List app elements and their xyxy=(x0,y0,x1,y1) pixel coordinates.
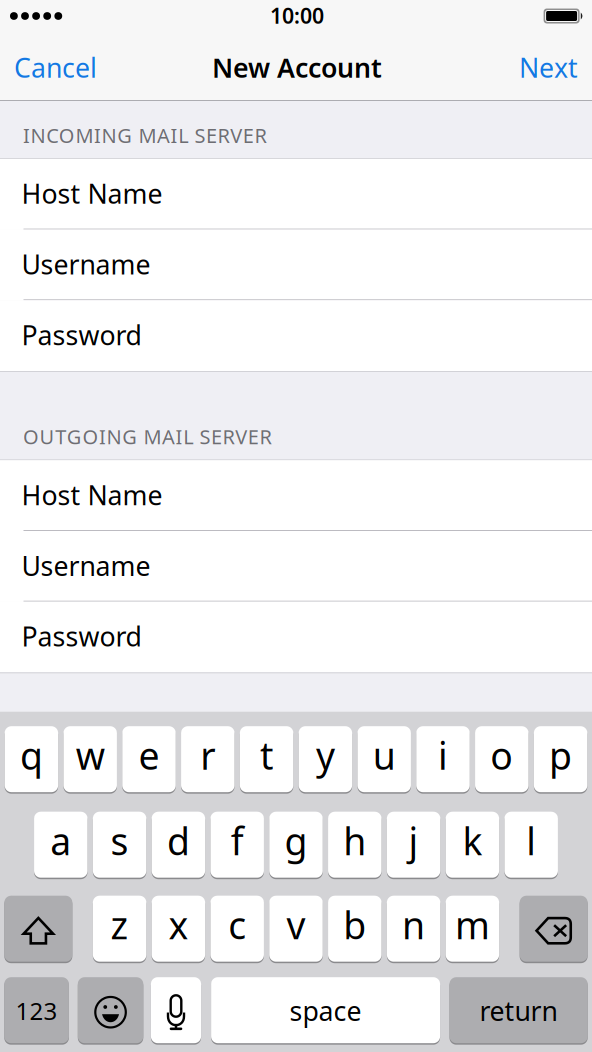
button[interactable]: q xyxy=(5,725,58,793)
staticText: Host Name xyxy=(21,176,162,211)
staticText: y xyxy=(316,730,335,780)
staticText: r xyxy=(200,730,215,780)
staticText: Username xyxy=(21,548,150,583)
button[interactable]: j xyxy=(387,811,440,879)
button[interactable]: m xyxy=(446,895,499,963)
staticText: o xyxy=(490,730,513,780)
staticText: t xyxy=(260,730,273,780)
staticText: w xyxy=(76,730,105,780)
button[interactable]: Host Name xyxy=(0,159,592,230)
button[interactable]: r xyxy=(181,725,234,793)
staticText: x xyxy=(168,900,188,949)
staticText: b xyxy=(343,900,366,949)
staticText: h xyxy=(343,816,366,865)
staticText: n xyxy=(402,900,425,949)
button[interactable]: t xyxy=(240,725,293,793)
button[interactable]: g xyxy=(269,811,323,879)
button[interactable]: z xyxy=(93,895,146,963)
staticText: g xyxy=(284,816,307,865)
button[interactable]: space xyxy=(211,976,440,1044)
button[interactable]: y xyxy=(299,725,352,793)
staticText: New Account xyxy=(212,50,382,85)
staticText: k xyxy=(462,816,482,865)
staticText: 123 xyxy=(16,995,58,1027)
staticText: z xyxy=(111,900,129,949)
staticText: p xyxy=(549,730,572,780)
button[interactable]: f xyxy=(210,811,264,879)
staticText: OUTGOING MAIL SERVER xyxy=(23,423,271,450)
staticText: i xyxy=(438,730,448,780)
staticText: v xyxy=(286,900,305,949)
staticText: s xyxy=(111,816,129,865)
button[interactable]: o xyxy=(475,725,529,793)
button[interactable]: v xyxy=(269,895,323,963)
button[interactable]: Host Name xyxy=(0,460,592,531)
button[interactable]: s xyxy=(93,811,146,879)
staticText: e xyxy=(138,730,159,780)
button[interactable]: Username xyxy=(0,230,592,300)
button[interactable]: Username xyxy=(0,531,592,602)
staticText: f xyxy=(231,816,244,865)
button[interactable]: w xyxy=(63,725,117,793)
button[interactable]: Delete xyxy=(520,895,588,963)
staticText: m xyxy=(455,900,490,949)
button[interactable]: d xyxy=(152,811,205,879)
staticText: INCOMING MAIL SERVER xyxy=(23,122,266,148)
button[interactable]: x xyxy=(152,895,205,963)
button[interactable]: l xyxy=(504,811,558,879)
button[interactable]: c xyxy=(210,895,264,963)
button[interactable]: 123 xyxy=(4,976,69,1044)
button[interactable]: p xyxy=(534,725,587,793)
staticText: d xyxy=(167,816,190,865)
staticText: return xyxy=(480,993,558,1028)
button[interactable]: i xyxy=(416,725,470,793)
staticText: Next xyxy=(519,50,578,85)
staticText: a xyxy=(50,816,71,865)
staticText: Password xyxy=(21,317,141,352)
staticText: Cancel xyxy=(14,50,97,85)
button[interactable]: k xyxy=(446,811,499,879)
staticText: Host Name xyxy=(21,477,162,512)
button[interactable]: h xyxy=(328,811,382,879)
button[interactable]: return xyxy=(449,976,588,1044)
button[interactable]: Shift xyxy=(4,895,72,963)
button[interactable]: n xyxy=(387,895,440,963)
staticText: j xyxy=(409,816,419,865)
button[interactable]: u xyxy=(357,725,411,793)
button[interactable]: a xyxy=(34,811,88,879)
staticText: Password xyxy=(21,618,141,654)
button[interactable]: Password xyxy=(0,602,592,672)
staticText: u xyxy=(373,730,396,780)
button[interactable]: Emoji xyxy=(78,976,143,1044)
button[interactable]: Dictation xyxy=(151,976,201,1044)
staticText: Username xyxy=(21,246,150,282)
button[interactable]: b xyxy=(328,895,382,963)
button[interactable]: Next xyxy=(505,40,592,101)
staticText: q xyxy=(20,730,43,780)
staticText: space xyxy=(290,993,362,1028)
staticText: c xyxy=(228,900,246,949)
button[interactable]: Password xyxy=(0,300,592,371)
button[interactable]: Cancel xyxy=(0,40,111,101)
staticText: 10:00 xyxy=(270,1,324,30)
staticText: l xyxy=(526,816,536,865)
button[interactable]: e xyxy=(122,725,176,793)
